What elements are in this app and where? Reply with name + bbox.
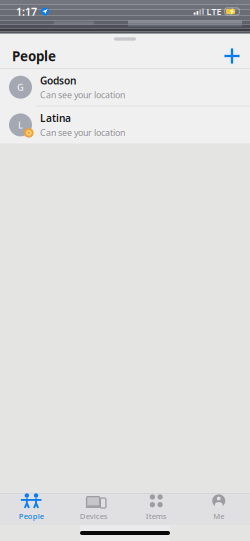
- staticText: Me: [213, 511, 224, 521]
- staticText: Devices: [80, 511, 108, 521]
- button[interactable]: L: [0, 106, 250, 143]
- button[interactable]: G: [0, 69, 250, 106]
- button[interactable]: Add person: [219, 44, 245, 68]
- staticText: Can see your location: [40, 89, 125, 101]
- staticText: People: [19, 511, 44, 521]
- staticText: Items: [146, 511, 167, 521]
- staticText: 1:17: [16, 4, 37, 19]
- staticText: People: [12, 47, 56, 65]
- button[interactable]: People: [0, 491, 62, 528]
- staticText: Godson: [40, 74, 76, 87]
- button[interactable]: Me: [187, 491, 250, 528]
- button[interactable]: Devices: [62, 491, 125, 528]
- staticText: L: [18, 118, 23, 131]
- staticText: G: [17, 81, 24, 93]
- staticText: Can see your location: [40, 127, 125, 139]
- staticText: LTE: [206, 5, 221, 17]
- staticText: Latina: [40, 111, 71, 125]
- button[interactable]: Items: [125, 491, 187, 528]
